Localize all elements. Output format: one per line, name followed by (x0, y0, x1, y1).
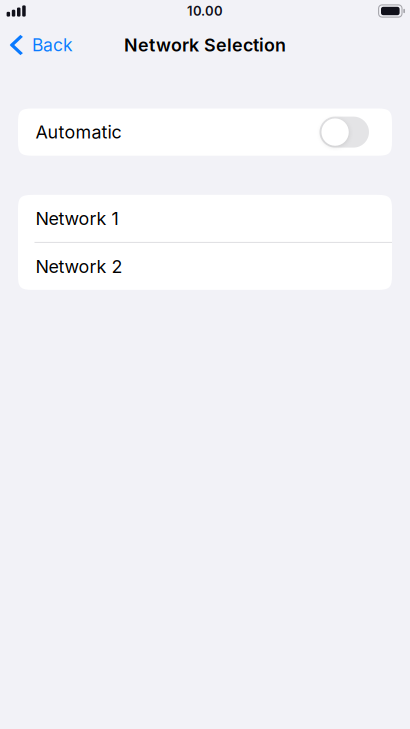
staticText: Network 1 (35, 208, 118, 229)
staticText: Network Selection (124, 34, 286, 56)
button[interactable]: Automatic (18, 108, 392, 156)
staticText: Network 2 (35, 256, 122, 277)
staticText: 10.00 (187, 3, 223, 19)
button[interactable]: Network 1 (18, 195, 392, 242)
staticText: Back (32, 34, 73, 55)
staticText: Automatic (35, 121, 121, 143)
button[interactable]: Network 2 (18, 243, 392, 290)
button[interactable]: Back (0, 28, 83, 61)
